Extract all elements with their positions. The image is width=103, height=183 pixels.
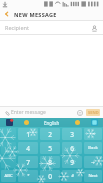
button[interactable]: Enter message bbox=[11, 107, 75, 118]
button[interactable] bbox=[1, 128, 16, 140]
button[interactable]: Keyboard settings bbox=[86, 118, 103, 127]
staticText: → bbox=[91, 160, 95, 165]
staticText: * bbox=[27, 173, 30, 179]
staticText: English bbox=[44, 120, 60, 126]
button[interactable]: Back bbox=[84, 142, 102, 154]
button[interactable]: Recipient bbox=[5, 21, 89, 34]
button[interactable]: 3 bbox=[62, 128, 82, 140]
button[interactable]: 5 bbox=[40, 142, 60, 154]
button[interactable] bbox=[1, 156, 16, 168]
staticText: 5 bbox=[48, 144, 52, 153]
button[interactable]: SEND bbox=[86, 109, 100, 116]
button[interactable]: 7 bbox=[18, 156, 38, 168]
staticText: # bbox=[71, 173, 74, 179]
staticText: Recipient bbox=[5, 24, 29, 31]
button[interactable]: * bbox=[18, 170, 38, 182]
button[interactable]: 4 bbox=[18, 142, 38, 154]
button[interactable]: 1 bbox=[18, 128, 38, 140]
button[interactable]: Emoji bbox=[75, 108, 84, 117]
staticText: 1 bbox=[26, 130, 30, 139]
button[interactable]: Next bbox=[84, 170, 102, 182]
staticText: Next bbox=[88, 173, 98, 179]
button[interactable]: 9 bbox=[62, 156, 82, 168]
staticText: NEW MESSAGE bbox=[14, 11, 57, 18]
staticText: SEND bbox=[88, 110, 99, 115]
staticText: × bbox=[92, 131, 95, 137]
button[interactable]: 6 bbox=[62, 142, 82, 154]
staticText: ABC bbox=[4, 173, 13, 179]
staticText: 6 bbox=[70, 144, 74, 153]
staticText: 9 bbox=[70, 158, 74, 167]
staticText: 8 bbox=[48, 158, 52, 167]
button[interactable]: English bbox=[35, 118, 69, 127]
button[interactable]: Emoji keyboard bbox=[18, 118, 35, 127]
staticText: 2 bbox=[48, 130, 52, 139]
staticText: Back bbox=[88, 145, 98, 151]
staticText: Enter message bbox=[11, 109, 46, 116]
button[interactable]: 2 bbox=[40, 128, 60, 140]
button[interactable]: × bbox=[84, 128, 102, 140]
button[interactable] bbox=[1, 142, 16, 154]
staticText: 3 bbox=[70, 130, 74, 139]
staticText: 4 bbox=[26, 144, 30, 153]
button[interactable]: → bbox=[84, 156, 102, 168]
button[interactable]: Add recipient from contacts bbox=[89, 23, 99, 33]
button[interactable]: Back bbox=[0, 8, 14, 20]
button[interactable]: 8 bbox=[40, 156, 60, 168]
staticText: 0 bbox=[48, 172, 52, 181]
button[interactable]: Attach bbox=[3, 109, 11, 117]
button[interactable]: 0 bbox=[40, 170, 60, 182]
button[interactable]: ABC bbox=[1, 170, 16, 182]
button[interactable]: Stickers bbox=[69, 118, 86, 127]
button[interactable]: # bbox=[62, 170, 82, 182]
staticText: 7 bbox=[26, 158, 30, 167]
button[interactable]: Keyboard themes bbox=[0, 118, 18, 127]
